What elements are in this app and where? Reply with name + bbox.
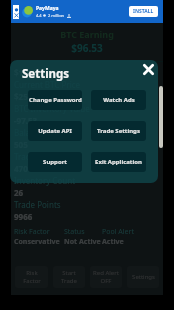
- staticText: PayMaya: [36, 5, 59, 12]
- staticText: Settings: [132, 273, 155, 281]
- staticText: Inventory Count: [14, 175, 76, 186]
- staticText: Update API: [38, 127, 72, 135]
- staticText: Not Active: [64, 237, 101, 247]
- button[interactable]: Close: [138, 60, 158, 79]
- staticText: 4.4: [36, 13, 42, 18]
- staticText: Red Alert OFF: [93, 269, 119, 285]
- button[interactable]: Start Trade: [53, 266, 85, 288]
- staticText: 2 million: [48, 13, 65, 18]
- staticText: -97.53: [14, 115, 38, 126]
- staticText: 26: [14, 187, 24, 198]
- button[interactable]: Update API: [28, 121, 82, 141]
- button[interactable]: Trade Settings: [91, 121, 146, 141]
- button[interactable]: Risk Factor: [15, 266, 48, 288]
- staticText: $96.53: [11, 41, 163, 55]
- staticText: 9966: [14, 211, 33, 222]
- staticText: Trade Count: [14, 151, 60, 162]
- staticText: BTC Earning: [11, 28, 163, 40]
- staticText: Trade Settings: [97, 127, 140, 135]
- staticText: Change Password: [29, 96, 82, 104]
- staticText: Status: [64, 227, 85, 237]
- staticText: Conservative: [14, 237, 60, 247]
- button[interactable]: Red Alert OFF: [90, 266, 122, 288]
- button[interactable]: Settings: [127, 266, 159, 288]
- button[interactable]: INSTALL: [129, 6, 158, 17]
- staticText: $1250.7: [14, 67, 44, 78]
- staticText: Risk Factor: [23, 269, 41, 285]
- staticText: Current BTC Price: [14, 79, 81, 90]
- staticText: BTC Inventory Value: [14, 103, 90, 114]
- button[interactable]: Support: [28, 152, 82, 172]
- staticText: Active: [102, 237, 124, 247]
- staticText: Watch Ads: [103, 96, 135, 104]
- staticText: Balance: [14, 127, 44, 138]
- staticText: Start Trade: [61, 269, 77, 285]
- staticText: Trade Points: [14, 199, 61, 210]
- button[interactable]: Change Password: [28, 90, 82, 110]
- button[interactable]: Watch Ads: [91, 90, 146, 110]
- staticText: Exit Application: [95, 158, 142, 166]
- staticText: Support: [43, 158, 67, 166]
- staticText: Pool Alert: [102, 227, 134, 237]
- button[interactable]: Exit Application: [91, 152, 146, 172]
- staticText: $2566.81: [14, 91, 49, 102]
- staticText: Settings: [22, 66, 70, 82]
- staticText: INSTALL: [133, 8, 154, 15]
- staticText: Risk Factor: [14, 227, 50, 237]
